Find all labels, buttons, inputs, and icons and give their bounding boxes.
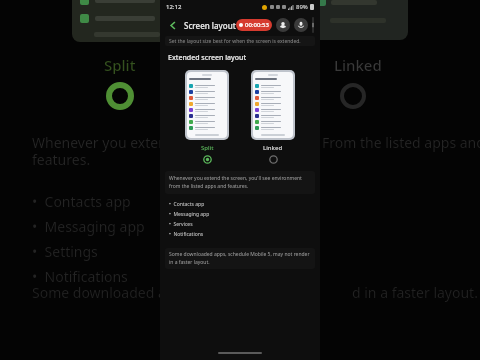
staticText: Split [201, 144, 214, 152]
staticText: Extended screen layout [168, 53, 247, 63]
staticText: • Contacts app [32, 192, 131, 211]
button[interactable]: Screen layout [184, 20, 236, 31]
staticText: Set the layout size best for when the sc… [169, 38, 301, 45]
staticText: Linked [263, 144, 283, 152]
button[interactable]: Back [166, 18, 180, 32]
staticText: • Notifications [169, 231, 204, 238]
staticText: Whenever you extend the [32, 133, 201, 152]
staticText: • Settings [32, 242, 98, 261]
staticText: Some downloaded apps, ch [32, 283, 213, 302]
staticText: Split [104, 55, 136, 75]
button[interactable]: Linked [249, 68, 297, 166]
staticText: • Messaging app [169, 211, 210, 218]
button[interactable]: 00:00:53 [239, 19, 269, 31]
button[interactable]: Account [276, 18, 290, 32]
staticText: • Messaging app [32, 217, 145, 236]
staticText: 89% [296, 3, 308, 11]
staticText: From the listed apps and [322, 133, 480, 152]
staticText: d in a faster layout. [352, 283, 478, 302]
staticText: 12:12 [166, 3, 182, 11]
staticText: features. [32, 150, 91, 169]
button[interactable]: Stop recording [312, 17, 314, 33]
staticText: • Contacts app [169, 201, 205, 208]
staticText: • Services [169, 221, 193, 228]
staticText: 00:00:53 [245, 21, 269, 29]
staticText: • Notifications [32, 267, 128, 286]
staticText: Linked [334, 55, 382, 75]
button[interactable]: Microphone [294, 18, 308, 32]
staticText: Some downloaded apps, schedule Mobile 5,… [169, 251, 311, 266]
staticText: Whenever you extend the screen, you'll s… [169, 175, 311, 190]
button[interactable]: Split [183, 68, 231, 166]
